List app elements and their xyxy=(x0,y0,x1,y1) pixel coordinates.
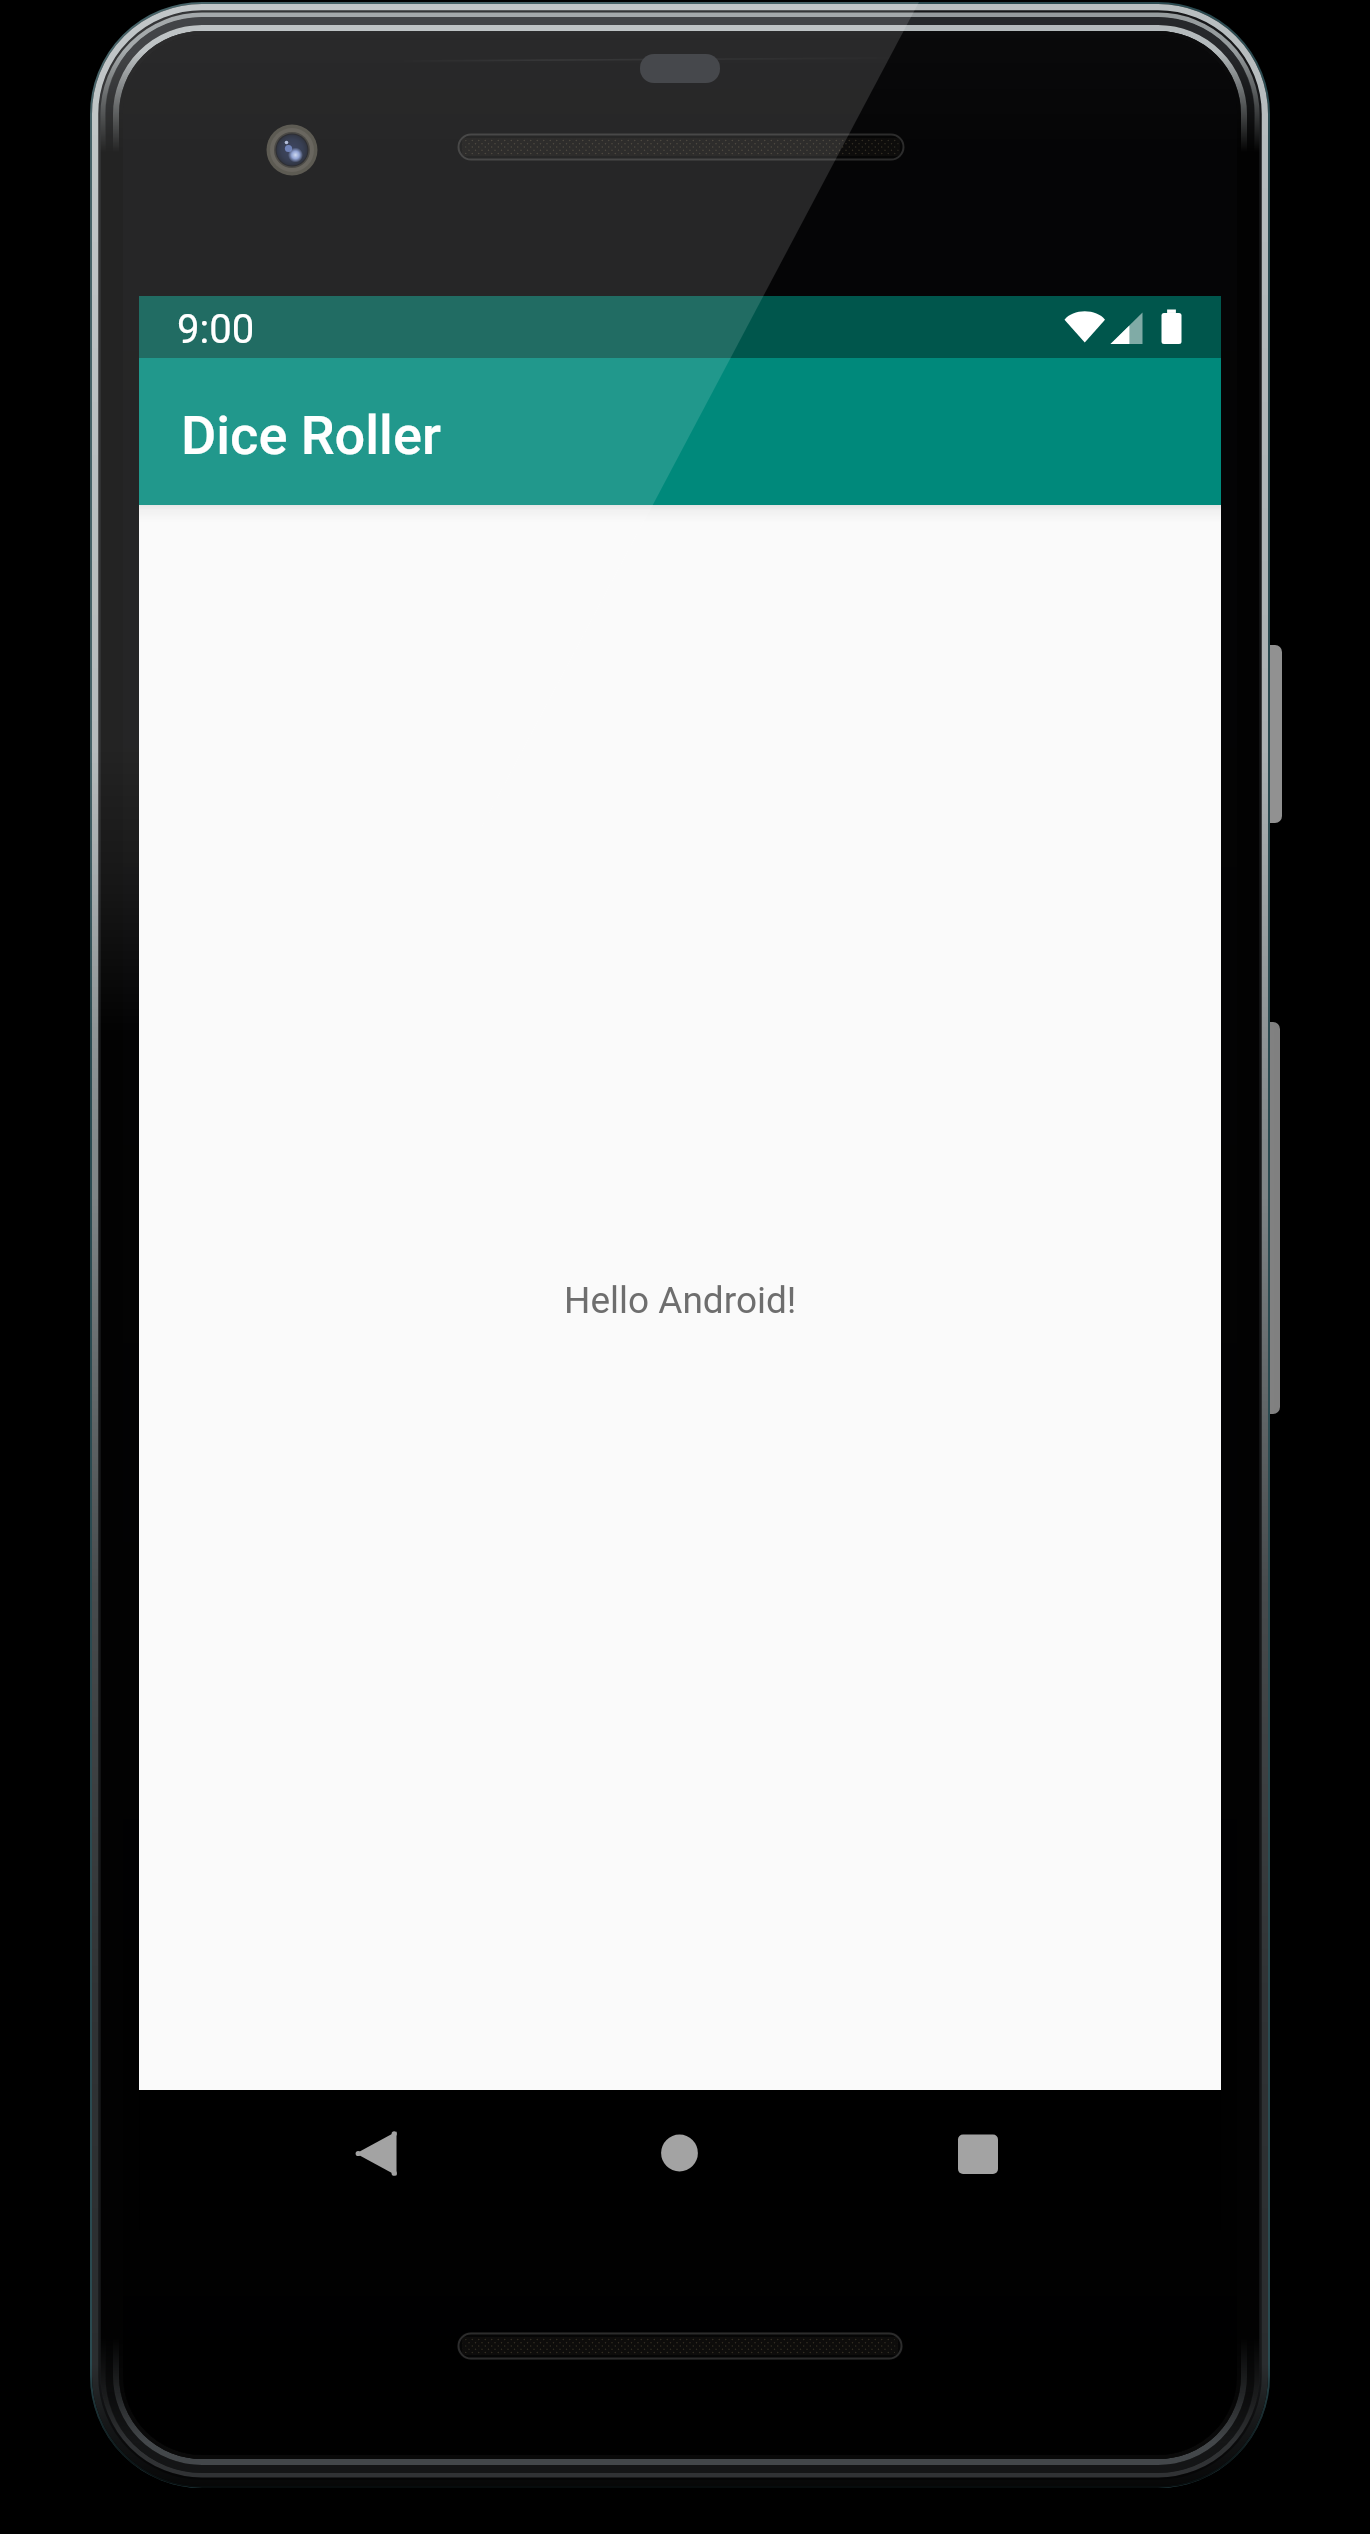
button[interactable]: Home xyxy=(620,2112,702,2194)
button[interactable]: Recents xyxy=(917,2112,999,2194)
button[interactable]: Back xyxy=(318,2112,400,2194)
staticText: Dice Roller xyxy=(181,404,441,467)
staticText: Hello Android! xyxy=(564,1279,797,1322)
staticText: 9:00 xyxy=(177,306,255,353)
button[interactable]: Dice Roller xyxy=(139,358,1221,505)
